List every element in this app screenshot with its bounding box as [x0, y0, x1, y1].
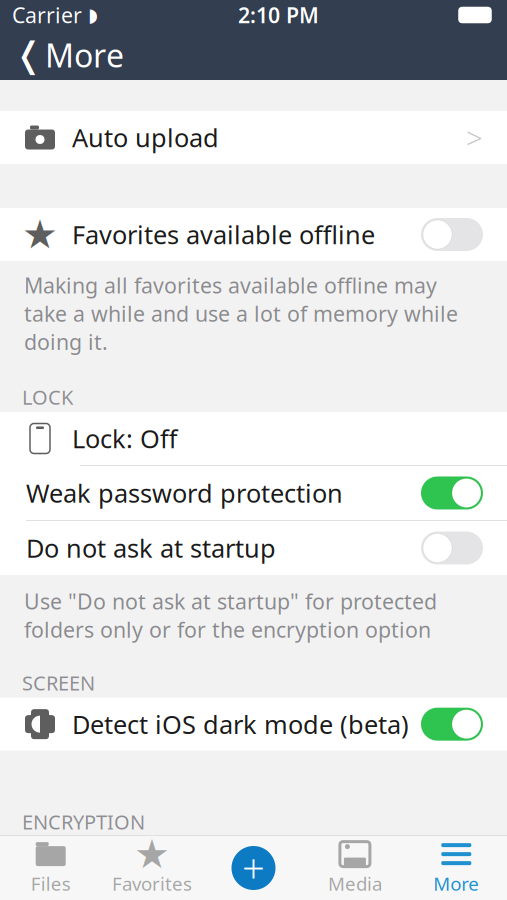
staticText: Detect iOS dark mode (beta)	[72, 707, 409, 741]
staticText: Files	[31, 871, 71, 896]
staticText: >	[466, 118, 483, 157]
staticText: More	[433, 871, 479, 896]
staticText: Auto upload	[72, 121, 219, 154]
button[interactable]: Auto upload	[0, 111, 507, 164]
button[interactable]: Do not ask at startup	[0, 521, 507, 575]
staticText: End-to-end encryption (Experimental)	[72, 829, 339, 897]
staticText: >	[466, 844, 483, 883]
button[interactable]: Lock: Off	[0, 412, 507, 465]
staticText: Do not ask at startup	[26, 531, 276, 565]
staticText: LOCK	[22, 384, 73, 410]
staticText: ENCRYPTION	[22, 808, 145, 835]
staticText: SCREEN	[22, 669, 95, 696]
staticText: +	[242, 841, 265, 894]
button[interactable]: Add	[203, 836, 304, 900]
button[interactable]: ❬	[0, 28, 124, 82]
button[interactable]: Detect iOS dark mode (beta)	[0, 698, 507, 751]
button[interactable]: More	[406, 836, 507, 900]
staticText: Use "Do not ask at startup" for protecte…	[24, 587, 437, 644]
staticText: ★	[22, 212, 58, 257]
staticText: Carrier	[12, 1, 82, 29]
button[interactable]: Media	[304, 836, 406, 900]
staticText: Making all favorites available offline m…	[24, 271, 458, 356]
staticText: ❬	[14, 35, 43, 75]
staticText: Favorites	[112, 871, 192, 896]
button[interactable]: ★	[101, 836, 203, 900]
staticText: Lock: Off	[72, 422, 177, 455]
staticText: ★	[134, 831, 170, 877]
staticText: Media	[328, 871, 382, 896]
staticText: Weak password protection	[26, 476, 343, 510]
button[interactable]: ★	[0, 208, 507, 261]
staticText: ◗	[88, 4, 98, 26]
button[interactable]: Weak password protection	[0, 466, 507, 520]
staticText: 2:10 PM	[238, 1, 319, 29]
staticText: More	[45, 34, 124, 76]
staticText: Favorites available offline	[72, 218, 375, 251]
button[interactable]: Files	[0, 836, 101, 900]
button[interactable]: End-to-end encryption (Experimental)	[0, 837, 507, 890]
